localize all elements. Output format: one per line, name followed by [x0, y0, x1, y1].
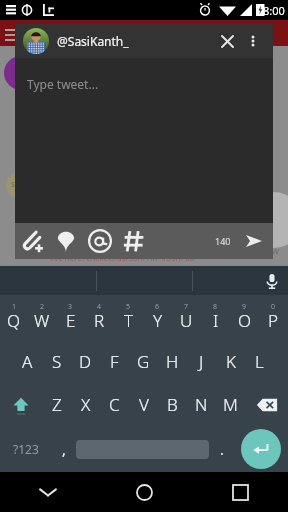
staticText: Z	[52, 393, 62, 416]
button[interactable]: 0	[259, 295, 288, 340]
staticText: M	[223, 393, 238, 416]
staticText: ?123	[13, 441, 39, 457]
staticText: I	[213, 309, 219, 332]
button[interactable]: J	[187, 340, 216, 383]
button[interactable]: K	[216, 340, 245, 383]
staticText: J	[199, 350, 204, 373]
staticText: 4	[97, 302, 102, 312]
staticText: ,	[62, 440, 66, 459]
button[interactable]: ?123	[0, 426, 51, 472]
staticText: F	[110, 350, 119, 373]
staticText: P	[268, 309, 279, 332]
staticText: N	[195, 393, 208, 416]
button[interactable]: G	[129, 340, 158, 383]
staticText: V	[139, 393, 149, 416]
button[interactable]: X	[71, 383, 100, 426]
button[interactable]: D	[71, 340, 100, 383]
button[interactable]: Hashtag	[117, 224, 151, 258]
staticText: 140	[215, 235, 231, 247]
staticText: Q	[7, 309, 21, 332]
staticText: Y	[153, 309, 163, 332]
button[interactable]: Comma	[51, 426, 76, 472]
staticText: 2	[40, 302, 45, 312]
staticText: 3	[68, 302, 73, 312]
staticText: R	[94, 309, 105, 332]
button[interactable]: Recent apps	[192, 472, 288, 512]
staticText: 5	[126, 302, 131, 312]
staticText: G	[137, 350, 150, 373]
button[interactable]: N	[187, 383, 216, 426]
staticText: W	[34, 309, 50, 332]
button[interactable]: M	[216, 383, 245, 426]
staticText: live here: crickets.us/SSriPAK #SSriPak	[50, 252, 195, 263]
staticText: O	[238, 309, 252, 332]
staticText: 0	[271, 302, 276, 312]
staticText: w	[272, 244, 280, 256]
staticText: D	[79, 350, 92, 373]
staticText: @SasiKanth_	[57, 33, 129, 49]
staticText: 8	[213, 302, 218, 312]
staticText: K	[226, 350, 236, 373]
button[interactable]: Z	[42, 383, 71, 426]
button[interactable]: 4	[85, 295, 114, 340]
button[interactable]: F	[100, 340, 129, 383]
button[interactable]: Backspace	[245, 383, 288, 426]
staticText: H	[166, 350, 179, 373]
staticText: E	[66, 309, 76, 332]
staticText: 9	[242, 302, 247, 312]
button[interactable]: B	[158, 383, 187, 426]
button[interactable]: 1	[0, 295, 28, 340]
staticText: L	[255, 350, 264, 373]
staticText: S	[11, 180, 15, 190]
button[interactable]: 5	[114, 295, 143, 340]
button[interactable]: 2	[28, 295, 56, 340]
button[interactable]: A	[13, 340, 42, 383]
staticText: 1	[12, 302, 17, 312]
button[interactable]: V	[129, 383, 158, 426]
button[interactable]: S	[42, 340, 71, 383]
staticText: A	[22, 350, 33, 373]
button[interactable]: 6	[143, 295, 172, 340]
button[interactable]: Space	[76, 426, 209, 472]
button[interactable]: Enter	[234, 426, 288, 472]
button[interactable]: Home	[96, 472, 192, 512]
button[interactable]: L	[245, 340, 274, 383]
staticText: Type tweet...	[27, 76, 99, 92]
button[interactable]: Add location	[49, 224, 83, 258]
staticText: T	[124, 309, 134, 332]
staticText: U	[180, 309, 193, 332]
button[interactable]: Send tweet	[239, 226, 269, 256]
button[interactable]: Voice input	[193, 266, 288, 295]
button[interactable]: Close	[213, 27, 241, 55]
staticText: 7	[184, 302, 189, 312]
button[interactable]: Add photo	[15, 224, 49, 258]
button[interactable]: Type tweet...	[15, 58, 273, 223]
button[interactable]: C	[100, 383, 129, 426]
button[interactable]: Shift	[0, 383, 42, 426]
staticText: S	[52, 350, 62, 373]
button[interactable]: Period	[209, 426, 234, 472]
button[interactable]: Mention	[83, 224, 117, 258]
button[interactable]: 9	[230, 295, 259, 340]
button[interactable]: More options	[241, 29, 265, 53]
button[interactable]: 7	[172, 295, 201, 340]
staticText: B	[167, 393, 178, 416]
staticText: C	[109, 393, 120, 416]
button[interactable]: Hide keyboard	[0, 472, 96, 512]
button[interactable]: 8	[201, 295, 230, 340]
staticText: 8:00	[263, 3, 285, 18]
staticText: 6	[155, 302, 160, 312]
staticText: X	[81, 393, 91, 416]
staticText: .	[220, 440, 224, 459]
button[interactable]: 3	[56, 295, 85, 340]
button[interactable]: H	[158, 340, 187, 383]
